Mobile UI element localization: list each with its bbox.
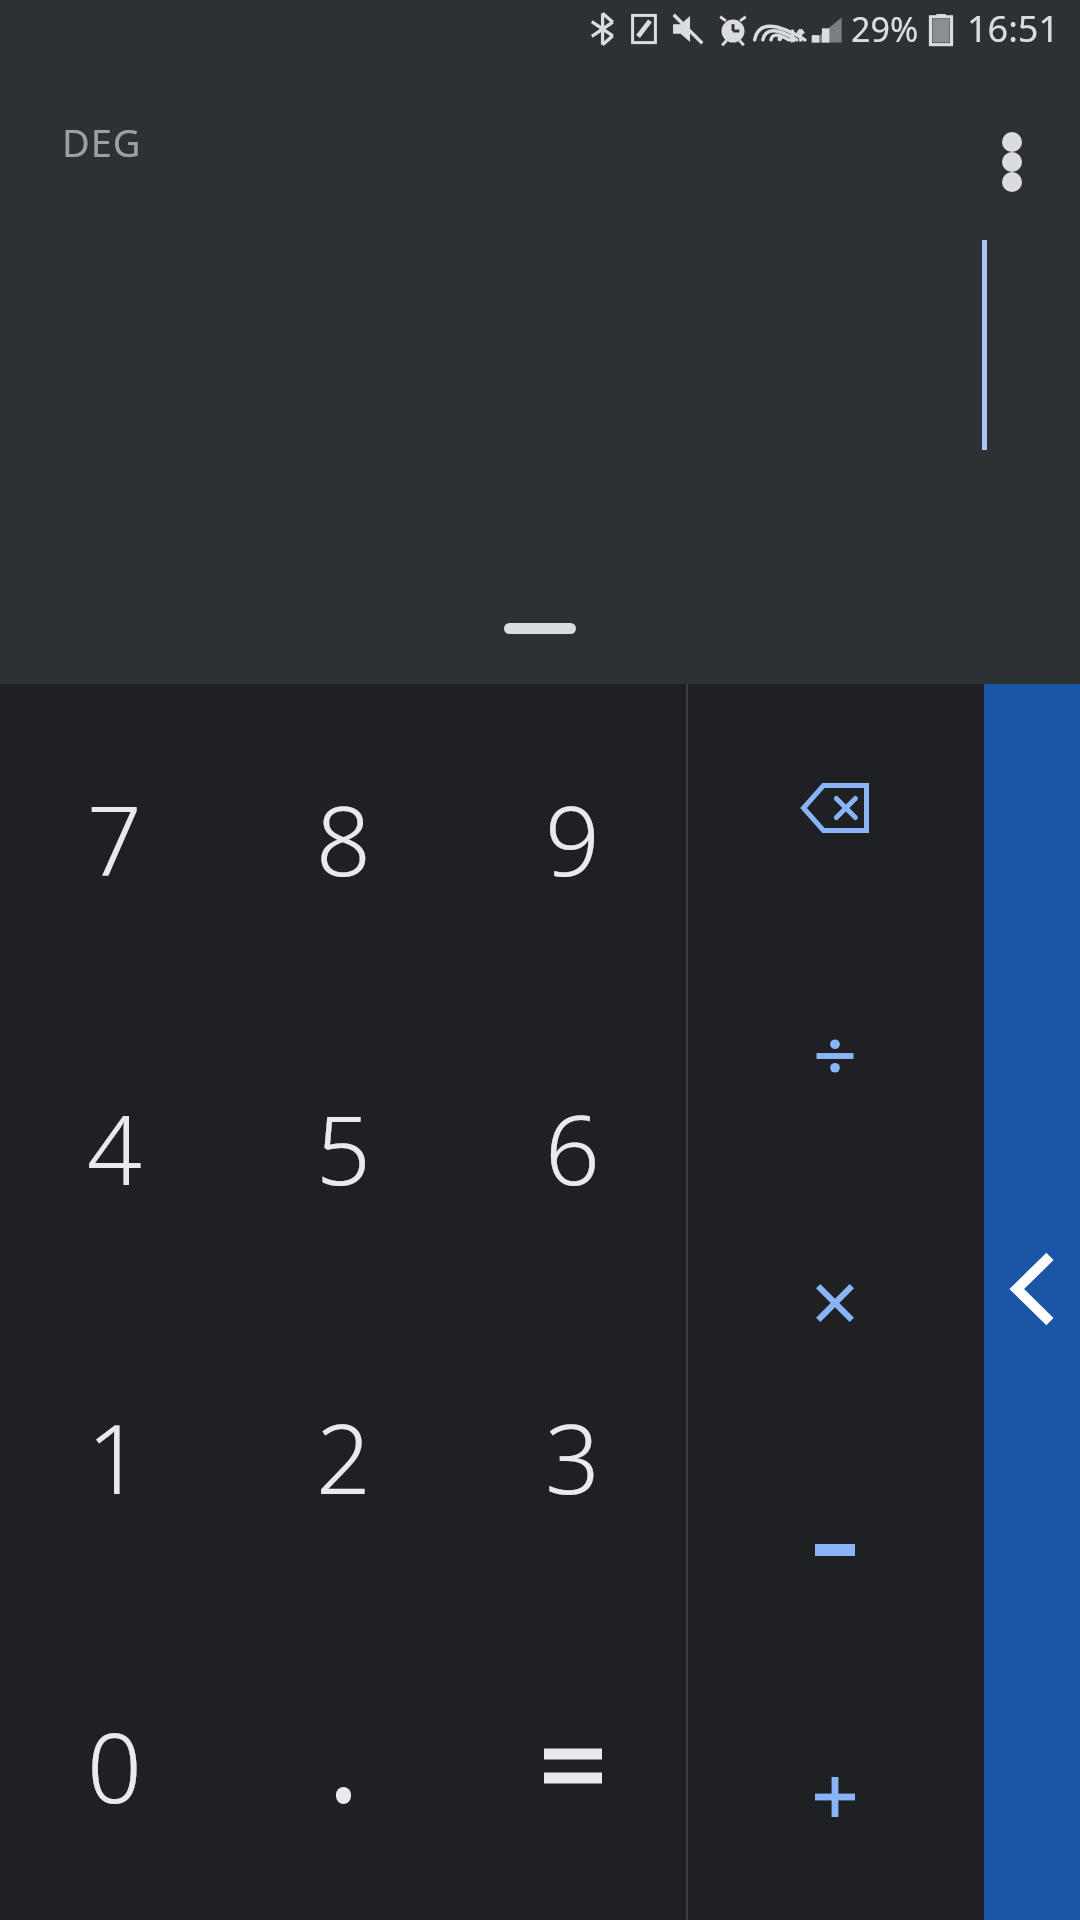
button[interactable] bbox=[229, 1611, 458, 1920]
staticText: 7 bbox=[87, 773, 142, 904]
button[interactable]: Minus bbox=[688, 1426, 984, 1673]
staticText: 0 bbox=[87, 1700, 142, 1831]
button[interactable]: 6 bbox=[458, 993, 687, 1302]
staticText: 5 bbox=[316, 1082, 371, 1213]
button[interactable]: 5 bbox=[229, 993, 458, 1302]
button[interactable]: 0 bbox=[0, 1611, 229, 1920]
button[interactable]: Divide bbox=[688, 932, 984, 1179]
button[interactable]: 3 bbox=[458, 1302, 687, 1611]
staticText: 6 bbox=[545, 1082, 600, 1213]
staticText: 1 bbox=[87, 1391, 142, 1522]
button[interactable]: Expand display bbox=[478, 597, 602, 660]
button[interactable]: Plus bbox=[688, 1673, 984, 1920]
button[interactable]: 9 bbox=[458, 684, 687, 993]
staticText: 9 bbox=[545, 773, 600, 904]
button[interactable]: More options bbox=[962, 112, 1062, 212]
button[interactable]: 7 bbox=[0, 684, 229, 993]
button[interactable]: Multiply bbox=[688, 1179, 984, 1426]
button[interactable]: 1 bbox=[0, 1302, 229, 1611]
button[interactable]: 4 bbox=[0, 993, 229, 1302]
button[interactable]: Back bbox=[984, 684, 1080, 1920]
button[interactable] bbox=[458, 1611, 687, 1920]
staticText: 16:51 bbox=[967, 4, 1060, 53]
staticText: 29% bbox=[851, 6, 919, 52]
button[interactable]: 2 bbox=[229, 1302, 458, 1611]
staticText: 4 bbox=[87, 1082, 142, 1213]
button[interactable]: DEG bbox=[40, 104, 164, 180]
button[interactable]: Backspace bbox=[688, 684, 984, 932]
button[interactable]: 8 bbox=[229, 684, 458, 993]
staticText: 2 bbox=[316, 1391, 371, 1522]
staticText: DEG bbox=[62, 116, 142, 168]
staticText: 3 bbox=[545, 1391, 600, 1522]
staticText: 8 bbox=[316, 773, 371, 904]
